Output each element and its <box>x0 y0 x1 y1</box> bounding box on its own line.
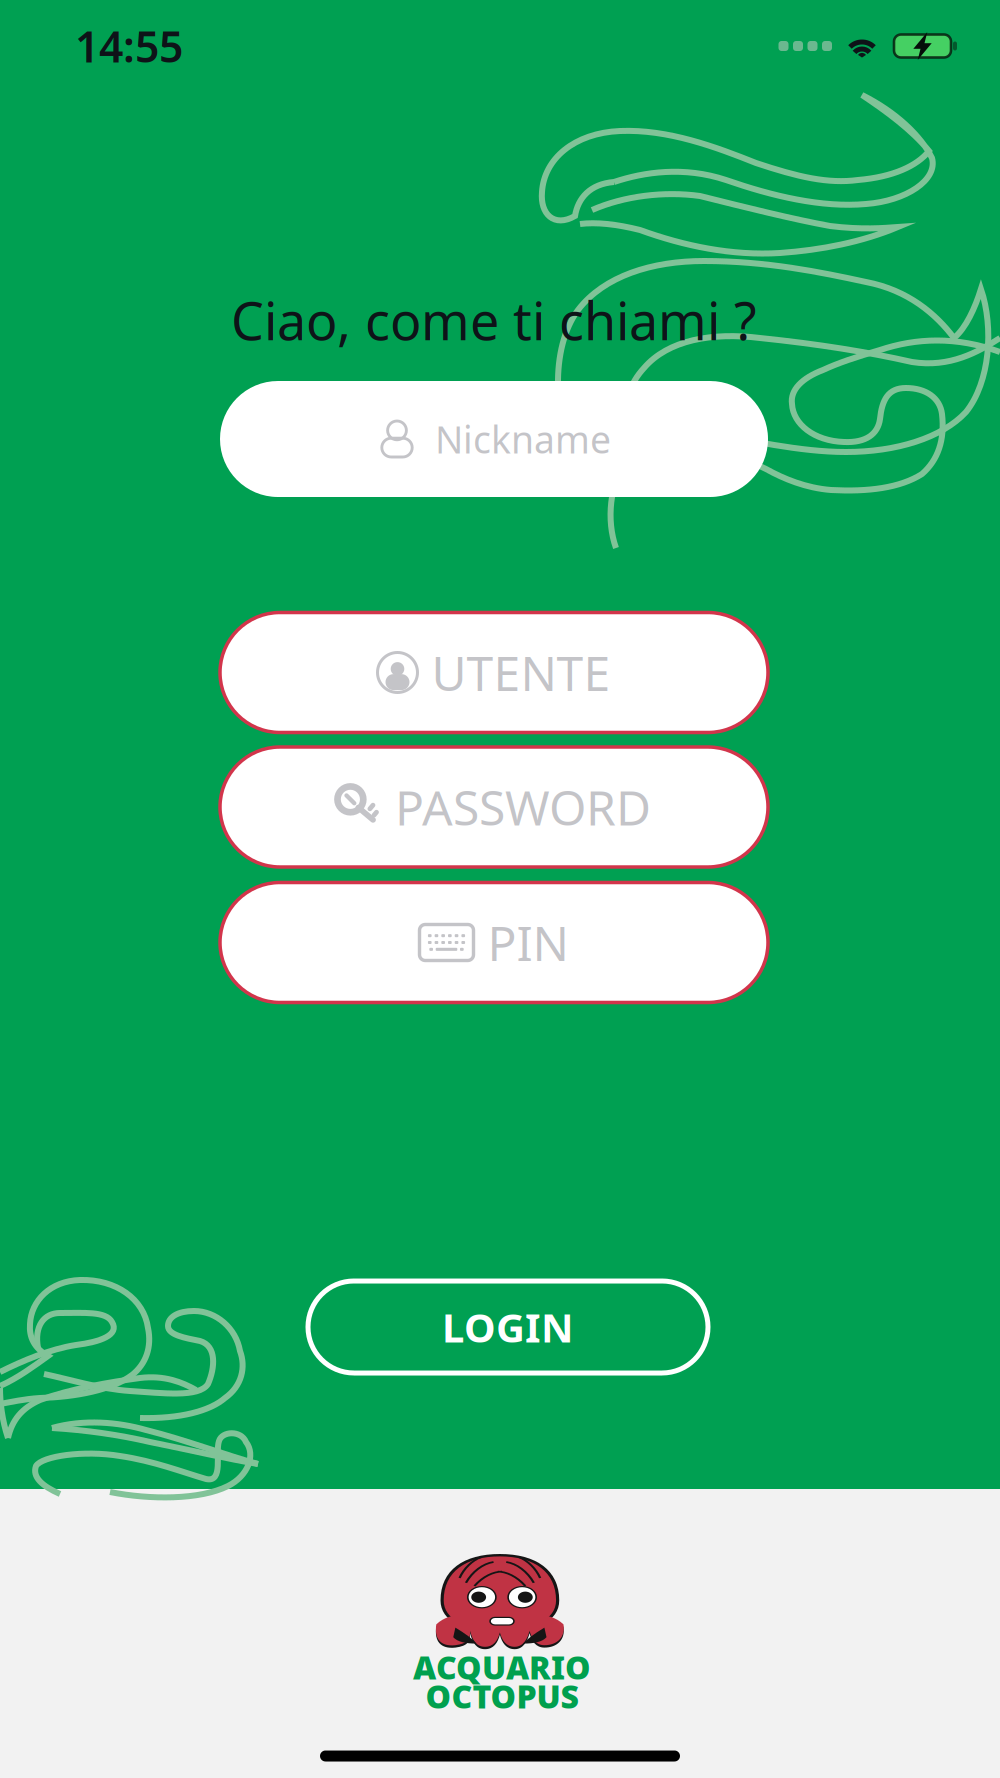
staticText: Ciao, come ti chiami ? <box>231 285 757 355</box>
staticText: LOGIN <box>442 1300 574 1353</box>
staticText: UTENTE <box>431 641 610 704</box>
button[interactable]: Nickname <box>220 381 768 497</box>
button[interactable]: PASSWORD <box>220 747 768 867</box>
staticText: PIN <box>487 911 568 974</box>
staticText: Nickname <box>435 414 611 464</box>
button[interactable]: PIN <box>220 882 768 1002</box>
button[interactable]: UTENTE <box>220 612 768 732</box>
button[interactable]: LOGIN <box>308 1281 708 1373</box>
staticText: OCTOPUS <box>425 1675 578 1717</box>
staticText: PASSWORD <box>395 775 651 839</box>
staticText: 14:55 <box>75 18 183 74</box>
staticText: ACQUARIO <box>413 1646 591 1688</box>
